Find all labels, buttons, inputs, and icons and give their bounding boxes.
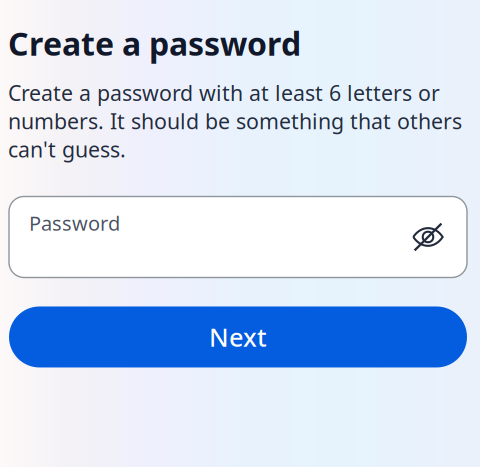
button[interactable]: Hide password bbox=[406, 215, 450, 259]
button[interactable]: Next bbox=[9, 306, 467, 367]
staticText: Create a password bbox=[8, 22, 301, 64]
staticText: Next bbox=[209, 320, 267, 354]
staticText: Password bbox=[29, 210, 120, 236]
button[interactable]: Password bbox=[9, 196, 467, 277]
staticText: Create a password with at least 6 letter… bbox=[8, 78, 462, 163]
